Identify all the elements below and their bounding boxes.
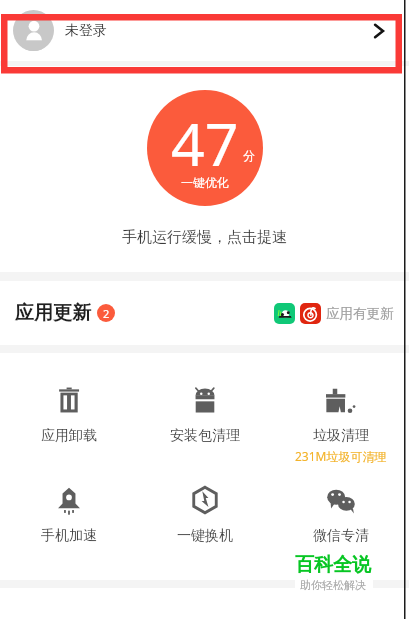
- staticText: 231M垃圾可清理: [295, 448, 387, 464]
- staticText: 安装包清理: [170, 427, 240, 445]
- staticText: 一键换机: [177, 527, 233, 545]
- staticText: 一键优化: [181, 175, 229, 190]
- staticText: 未登录: [65, 22, 107, 40]
- button[interactable]: 微信专清: [273, 453, 409, 553]
- staticText: 垃圾清理: [313, 427, 369, 445]
- staticText: 微信专清: [313, 527, 369, 545]
- button[interactable]: 应用卸载: [0, 353, 137, 453]
- button[interactable]: 应用更新: [0, 281, 409, 345]
- staticText: 手机加速: [41, 527, 97, 545]
- staticText: 应用更新: [15, 301, 91, 325]
- staticText: 47: [171, 103, 239, 183]
- button[interactable]: 未登录: [0, 0, 409, 61]
- staticText: 分: [243, 148, 255, 163]
- staticText: 应用有更新: [326, 305, 394, 322]
- button[interactable]: 百科全说: [256, 553, 409, 592]
- staticText: 百科全说: [295, 553, 371, 577]
- staticText: 助你轻松解决: [300, 578, 366, 592]
- button[interactable]: 一键换机: [137, 453, 273, 553]
- button[interactable]: 47: [147, 90, 263, 206]
- staticText: 手机运行缓慢，点击提速: [122, 228, 287, 247]
- button[interactable]: 手机加速: [0, 453, 137, 553]
- staticText: 2: [103, 306, 110, 321]
- button[interactable]: Open account: [362, 14, 396, 48]
- button[interactable]: 安装包清理: [137, 353, 273, 453]
- staticText: 应用卸载: [41, 427, 97, 445]
- button[interactable]: 垃圾清理: [273, 353, 409, 453]
